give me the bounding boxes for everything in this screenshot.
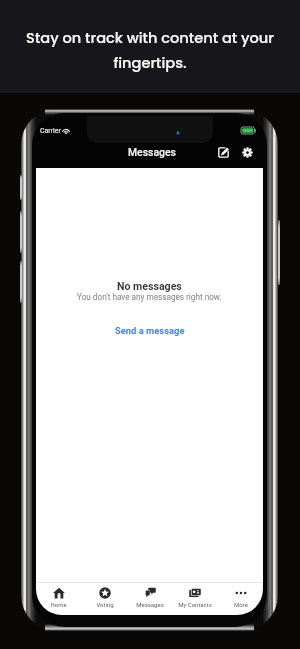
button[interactable]: Voting [82, 583, 127, 615]
staticText: Send a message [115, 325, 185, 336]
staticText: Carrier [40, 127, 61, 135]
staticText: Messages [136, 601, 164, 608]
staticText: Stay on track with content at your finge… [16, 28, 284, 73]
button[interactable]: Settings [239, 144, 255, 160]
button[interactable]: Home [36, 583, 81, 615]
staticText: No messages [117, 280, 182, 292]
staticText: You don't have any messages right now. [77, 292, 222, 302]
staticText: Messages [128, 146, 176, 158]
staticText: More [234, 601, 248, 608]
button[interactable]: Send a message [115, 325, 185, 336]
button[interactable]: Compose new message [215, 144, 231, 160]
button[interactable]: Messages [127, 583, 172, 615]
staticText: Home [50, 601, 67, 608]
button[interactable]: My Contacts [172, 583, 217, 615]
button[interactable]: More [218, 583, 263, 615]
staticText: My Contacts [178, 601, 212, 608]
staticText: Voting [96, 601, 114, 608]
